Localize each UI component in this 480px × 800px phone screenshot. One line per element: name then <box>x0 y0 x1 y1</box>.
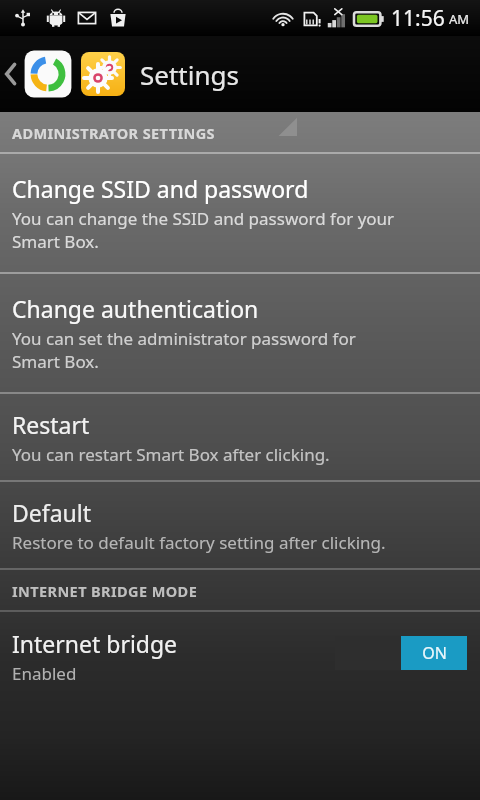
button[interactable]: Change SSID and password <box>0 154 480 272</box>
staticText: Default <box>12 497 92 528</box>
staticText: Change SSID and password <box>12 173 309 204</box>
button[interactable]: Internet bridge toggle, on <box>335 636 467 670</box>
staticText: Change authentication <box>12 293 259 324</box>
staticText: Enabled <box>12 662 77 685</box>
staticText: ADMINISTRATOR SETTINGS <box>12 123 215 143</box>
staticText: Restore to default factory setting after… <box>12 531 386 554</box>
button[interactable]: Navigate up <box>2 48 74 100</box>
staticText: Internet bridge <box>12 628 178 659</box>
staticText: You can set the administrator password f… <box>12 327 356 373</box>
staticText: AM <box>449 10 470 28</box>
staticText: Settings <box>140 57 239 92</box>
button[interactable]: Change authentication <box>0 274 480 392</box>
button[interactable]: Restart <box>0 394 480 480</box>
staticText: You can restart Smart Box after clicking… <box>12 443 330 466</box>
staticText: Restart <box>12 409 90 440</box>
staticText: You can change the SSID and password for… <box>12 207 395 253</box>
button[interactable]: Default <box>0 482 480 568</box>
staticText: INTERNET BRIDGE MODE <box>12 581 198 601</box>
button[interactable]: More options <box>277 115 297 137</box>
button[interactable]: Internet bridge <box>0 612 480 700</box>
staticText: ON <box>422 642 447 664</box>
staticText: 11:56 <box>391 4 445 33</box>
